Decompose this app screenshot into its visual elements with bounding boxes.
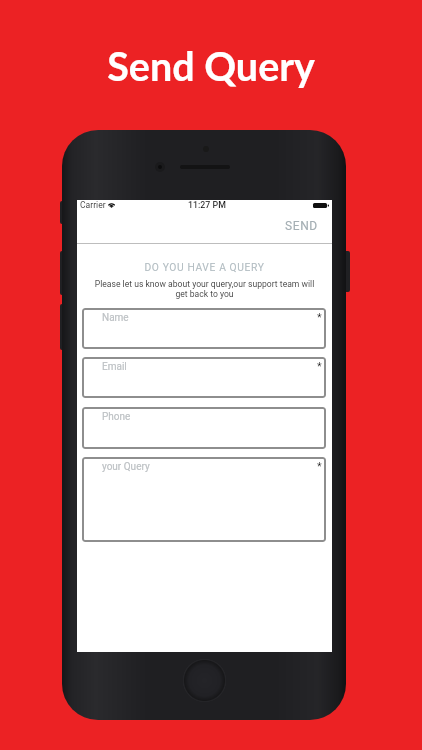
staticText: * bbox=[317, 360, 322, 373]
button[interactable]: Home bbox=[183, 659, 226, 702]
button[interactable]: your Query bbox=[82, 457, 326, 542]
staticText: Send Query bbox=[0, 42, 422, 89]
staticText: Email bbox=[102, 361, 127, 373]
button[interactable]: Volume down bbox=[60, 304, 67, 350]
button[interactable]: Name bbox=[82, 308, 326, 349]
staticText: SEND bbox=[285, 219, 318, 233]
button[interactable]: Phone bbox=[82, 407, 326, 449]
button[interactable]: Volume up bbox=[60, 251, 67, 295]
staticText: DO YOU HAVE A QUERY bbox=[77, 261, 332, 273]
staticText: 11:27 PM bbox=[188, 200, 226, 210]
button[interactable]: SEND bbox=[280, 216, 323, 236]
staticText: Carrier bbox=[80, 200, 106, 210]
staticText: your Query bbox=[102, 461, 150, 473]
staticText: * bbox=[317, 311, 322, 324]
staticText: Please let us know about your query,our … bbox=[88, 279, 321, 299]
button[interactable]: Email bbox=[82, 357, 326, 398]
staticText: Name bbox=[102, 312, 129, 324]
button[interactable]: Silent switch bbox=[60, 201, 67, 224]
button[interactable]: Power bbox=[343, 251, 350, 292]
staticText: Phone bbox=[102, 411, 131, 423]
staticText: * bbox=[317, 460, 322, 473]
